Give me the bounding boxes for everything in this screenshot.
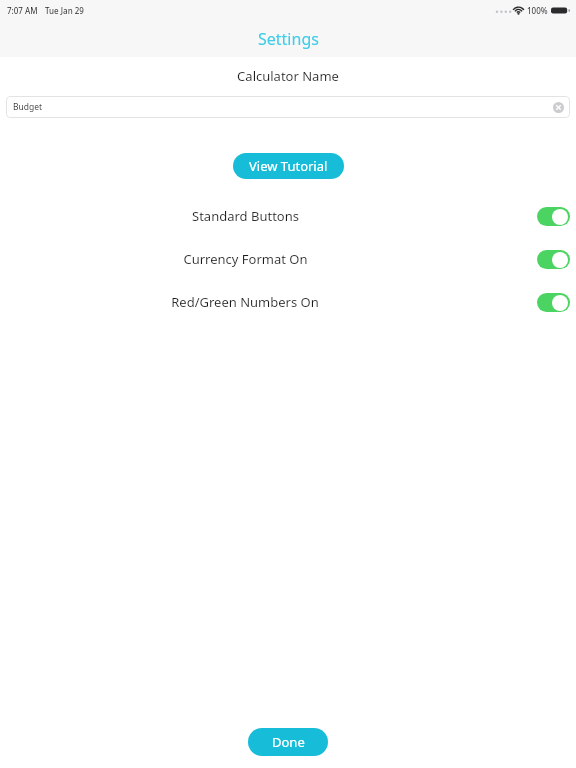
button[interactable]: Toggle on [537, 293, 570, 312]
staticText: Currency Format On [183, 250, 308, 268]
button[interactable]: Budget [6, 96, 570, 118]
button[interactable]: Toggle on [537, 207, 570, 226]
button[interactable]: Clear text [553, 102, 564, 113]
staticText: Budget [13, 101, 43, 113]
staticText: Tue Jan 29 [45, 5, 84, 16]
button[interactable]: View Tutorial [233, 153, 344, 179]
staticText: View Tutorial [249, 157, 328, 175]
button[interactable]: Red/Green Numbers On [0, 289, 576, 315]
staticText: Calculator Name [237, 67, 339, 85]
staticText: Standard Buttons [192, 207, 299, 225]
staticText: 7:07 AM [7, 5, 38, 16]
staticText: Settings [258, 28, 319, 50]
button[interactable]: Currency Format On [0, 246, 576, 272]
staticText: Done [272, 733, 305, 751]
button[interactable]: Toggle on [537, 250, 570, 269]
button[interactable]: Standard Buttons [0, 203, 576, 229]
button[interactable]: Done [248, 728, 328, 756]
staticText: Red/Green Numbers On [171, 293, 319, 311]
staticText: 100% [527, 5, 548, 16]
